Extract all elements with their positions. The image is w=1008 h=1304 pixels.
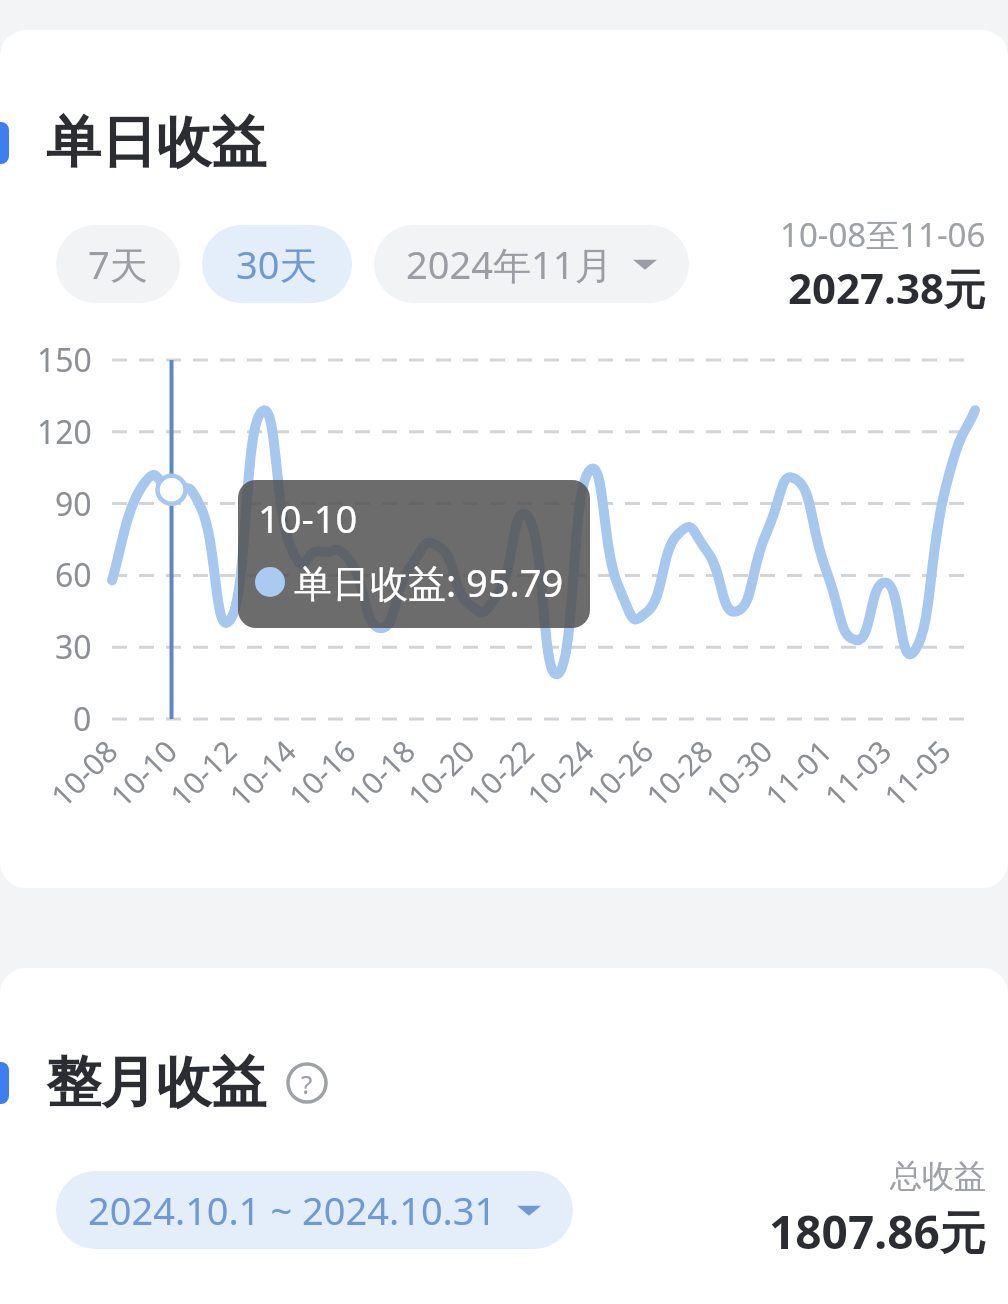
button[interactable]: 2024.10.1 ~ 2024.10.31 <box>56 1171 573 1249</box>
button[interactable]: 7天 <box>56 225 180 303</box>
staticText: ? <box>301 1066 313 1101</box>
staticText: 总收益 <box>890 1156 986 1196</box>
staticText: 2027.38元 <box>788 259 986 316</box>
staticText: 1807.86元 <box>769 1200 986 1263</box>
button[interactable]: 帮助说明 <box>286 1062 328 1104</box>
staticText: 2024年11月 <box>406 238 613 290</box>
button[interactable]: 2024年11月 <box>374 225 689 303</box>
staticText: 单日收益 <box>46 108 266 177</box>
staticText: 整月收益 <box>46 1048 266 1117</box>
staticText: 30天 <box>236 238 318 290</box>
staticText: 10-08至11-06 <box>780 212 986 257</box>
staticText: 2024.10.1 ~ 2024.10.31 <box>88 1184 497 1236</box>
staticText: 7天 <box>88 238 148 290</box>
button[interactable]: 30天 <box>202 225 352 303</box>
